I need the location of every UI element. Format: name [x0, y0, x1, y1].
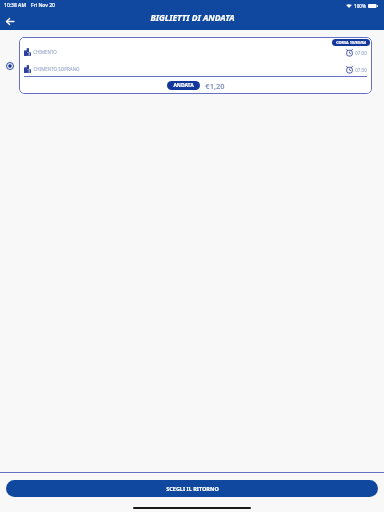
staticText: CORSA 10/80/84	[336, 40, 366, 45]
staticText: CHIMENTO	[33, 49, 57, 55]
staticText: 07:00	[355, 50, 367, 56]
staticText: 10:38 AM	[4, 2, 26, 9]
staticText: SCEGLI IL RITORNO	[166, 485, 219, 492]
staticText: 100%	[354, 3, 366, 9]
button[interactable]: Back	[3, 14, 17, 28]
staticText: €1,20	[205, 81, 225, 91]
staticText: CHIMENTO SOPRANO	[33, 66, 80, 72]
staticText: Fri Nov 20	[31, 2, 55, 9]
button[interactable]: CHIMENTO	[19, 37, 372, 94]
staticText: 07:30	[355, 67, 367, 73]
staticText: ANDATA	[173, 82, 194, 89]
button[interactable]: SCEGLI IL RITORNO	[6, 480, 378, 497]
button[interactable]: Seleziona biglietto	[4, 60, 16, 72]
staticText: BIGLIETTI DI ANDATA	[150, 12, 235, 24]
